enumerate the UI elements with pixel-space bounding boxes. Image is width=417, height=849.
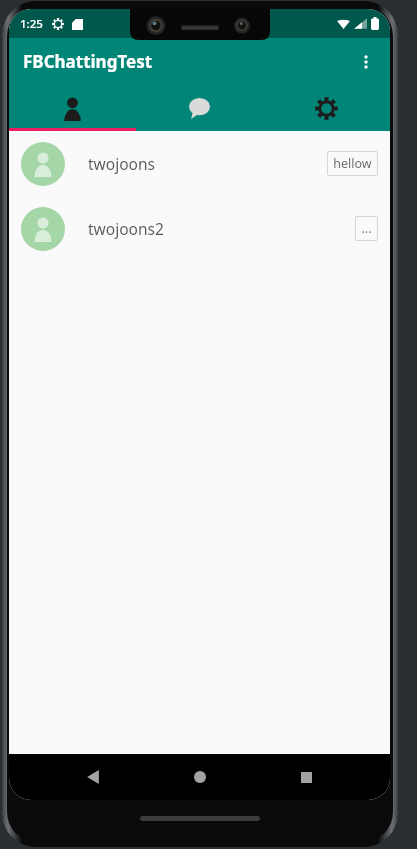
button[interactable]: twojoons [9,131,390,196]
button[interactable]: More options [346,42,386,82]
staticText: twojoons2 [88,218,355,239]
button[interactable]: Friends [9,85,136,131]
staticText: 1:25 [20,16,43,32]
staticText: twojoons [88,153,327,174]
staticText: FBChattingTest [23,50,153,73]
button[interactable]: Back [70,754,116,800]
button[interactable]: Settings [263,85,390,131]
staticText: hellow [333,155,372,172]
button[interactable]: twojoons2 [9,196,390,261]
button[interactable]: Chats [136,85,263,131]
button[interactable]: Recent apps [283,754,329,800]
button[interactable]: Home [177,754,223,800]
staticText: ... [361,220,372,237]
